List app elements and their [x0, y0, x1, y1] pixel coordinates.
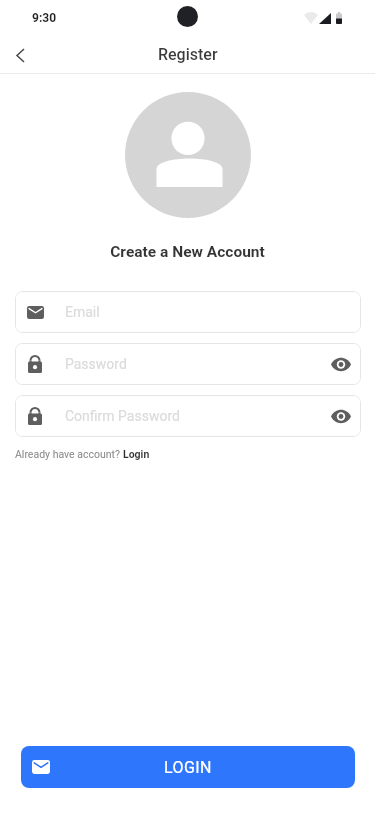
- staticText: Already have account?: [15, 448, 123, 460]
- button[interactable]: Confirm Password: [15, 395, 361, 437]
- staticText: Password: [65, 356, 127, 372]
- staticText: Login: [123, 448, 150, 460]
- staticText: 9:30: [32, 11, 57, 25]
- button[interactable]: Show password: [323, 346, 359, 382]
- staticText: Confirm Password: [65, 408, 180, 424]
- staticText: LOGIN: [164, 758, 212, 777]
- staticText: Register: [158, 45, 218, 64]
- button[interactable]: LOGIN: [21, 746, 355, 788]
- button[interactable]: Email: [15, 291, 361, 333]
- button[interactable]: Password: [15, 343, 361, 385]
- button[interactable]: Back: [2, 37, 38, 73]
- staticText: Email: [65, 304, 100, 320]
- button[interactable]: Login: [123, 448, 150, 460]
- button[interactable]: Show password: [323, 398, 359, 434]
- staticText: Create a New Account: [0, 243, 375, 261]
